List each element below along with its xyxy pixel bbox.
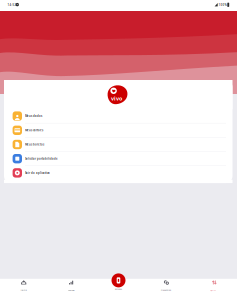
- button[interactable]: FINANCEIRO: [142, 279, 190, 296]
- button[interactable]: Recarga: [111, 273, 125, 287]
- staticText: Meus boletos: [25, 143, 44, 146]
- staticText: FINANCEIRO: [161, 289, 171, 291]
- staticText: Solicitar portabilidade: [25, 157, 58, 160]
- staticText: CONSUMO: [68, 289, 75, 291]
- staticText: Sair do aplicativo: [25, 171, 50, 175]
- staticText: 100%: [218, 3, 226, 7]
- staticText: 14:52: [7, 3, 16, 7]
- staticText: vivo: [111, 95, 122, 102]
- button[interactable]: AJUSTES: [190, 279, 237, 296]
- button[interactable]: Meus cartões: [4, 123, 232, 137]
- staticText: Meus dados: [25, 114, 42, 118]
- staticText: Meus cartões: [25, 128, 43, 132]
- staticText: AJUSTES: [210, 289, 216, 291]
- button[interactable]: Meus dados: [4, 109, 232, 123]
- staticText: RECARGA: [115, 288, 122, 290]
- button[interactable]: INÍCIO: [0, 279, 47, 296]
- button[interactable]: Solicitar portabilidade: [4, 152, 232, 166]
- button[interactable]: Sair do aplicativo: [4, 166, 232, 180]
- button[interactable]: CONSUMO: [47, 279, 95, 296]
- button[interactable]: Meus boletos: [4, 138, 232, 151]
- staticText: INÍCIO: [21, 289, 27, 291]
